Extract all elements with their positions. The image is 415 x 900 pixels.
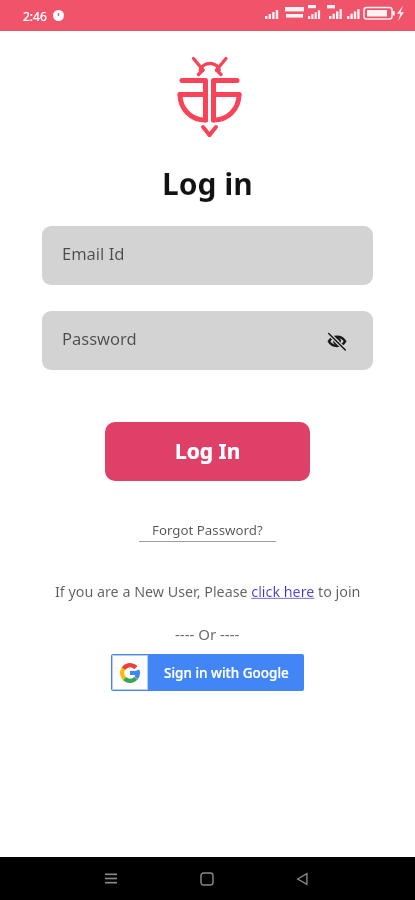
staticText: 2:46 [23, 8, 47, 24]
staticText: Log In [175, 437, 241, 466]
button[interactable]: Password [42, 311, 373, 370]
staticText: Log in [162, 163, 253, 204]
staticText: If you are a New User, Please click here… [55, 582, 361, 601]
staticText: Forgot Password? [152, 521, 263, 539]
button[interactable]: Log In [105, 422, 310, 481]
button[interactable]: Toggle password visibility [324, 328, 350, 354]
staticText: ---- Or ---- [175, 624, 240, 644]
button[interactable]: Email Id [42, 226, 373, 285]
staticText: Password [62, 327, 137, 349]
button[interactable]: Forgot Password? [139, 521, 276, 542]
staticText: Email Id [62, 242, 125, 264]
button[interactable]: Sign in with Google [111, 654, 304, 691]
button[interactable]: Back [279, 857, 325, 900]
staticText: Sign in with Google [164, 664, 289, 682]
button[interactable]: Recent apps [88, 857, 134, 900]
button[interactable]: Home [184, 857, 230, 900]
button[interactable]: If you are a New User, Please click here… [55, 582, 361, 601]
